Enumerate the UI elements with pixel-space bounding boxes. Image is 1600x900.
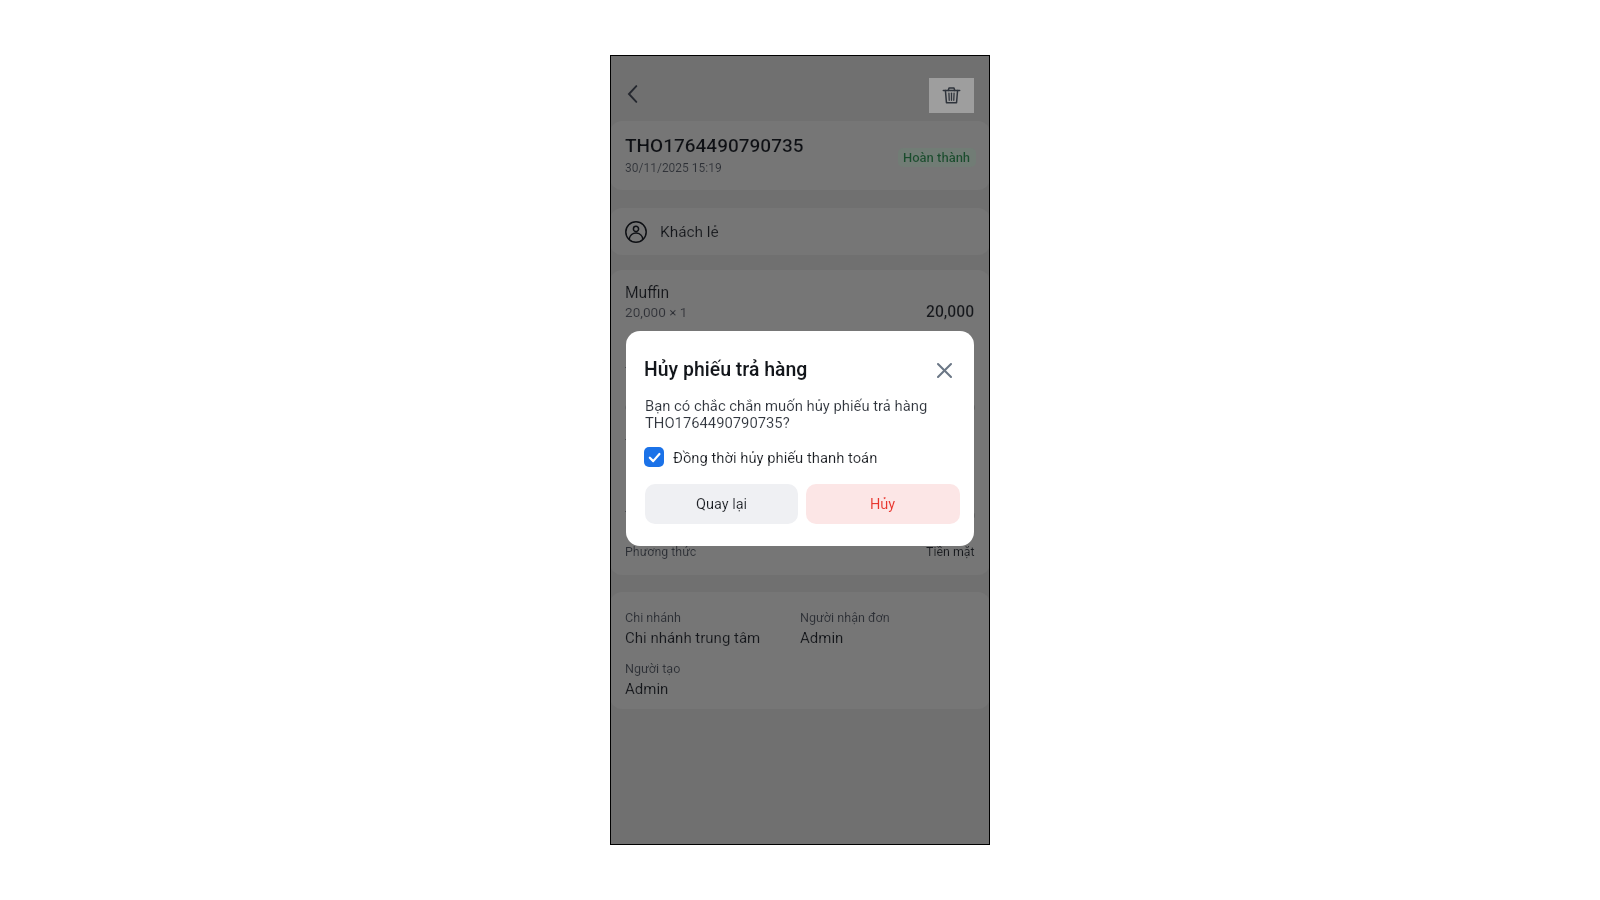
staticText: Bạn có chắc chắn muốn hủy phiếu trả hàng… <box>645 397 945 431</box>
staticText: Admin <box>800 629 844 647</box>
staticText: 0 <box>968 508 975 523</box>
staticText: Admin <box>625 680 669 698</box>
staticText: 20,000 <box>937 472 975 487</box>
staticText: 20,000 <box>937 364 975 379</box>
staticText: 30/11/2025 15:19 <box>625 161 722 175</box>
staticText: Tiền mặt <box>926 544 975 559</box>
staticText: Đồng thời hủy phiếu thanh toán <box>673 449 878 466</box>
staticText: 20,000 × 1 <box>625 304 688 320</box>
button[interactable]: Đồng thời hủy phiếu thanh toán <box>644 446 878 468</box>
staticText: Hoàn thành <box>903 150 971 165</box>
staticText: 0 <box>968 400 975 415</box>
button[interactable]: Back <box>614 76 650 112</box>
staticText: Phương thức <box>625 544 926 559</box>
staticText: Người tạo <box>625 661 681 676</box>
staticText: Tiền thừa <box>625 508 968 523</box>
staticText: Tổng tiền hàng <box>625 364 937 379</box>
staticText: Chi nhánh <box>625 610 681 625</box>
staticText: Chi nhánh trung tâm <box>625 629 761 647</box>
button[interactable]: Hủy <box>806 484 960 524</box>
staticText: Tổng cộng <box>625 436 937 451</box>
staticText: THO1764490790735 <box>625 134 804 156</box>
staticText: Muffin <box>625 284 670 302</box>
staticText: Hủy <box>870 496 896 513</box>
staticText: Khách đã trả <box>625 472 937 487</box>
button[interactable]: Quay lại <box>645 484 798 524</box>
staticText: 20,000 <box>926 302 975 320</box>
staticText: Người nhận đơn <box>800 610 890 625</box>
staticText: 20,000 <box>937 436 975 451</box>
staticText: Khách lẻ <box>660 223 719 241</box>
button[interactable]: Close <box>931 357 957 383</box>
button[interactable]: Delete <box>929 78 974 113</box>
staticText: Quay lại <box>696 496 748 513</box>
staticText: Hủy phiếu trả hàng <box>644 358 808 381</box>
staticText: Giảm giá <box>625 400 968 415</box>
